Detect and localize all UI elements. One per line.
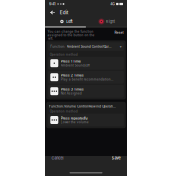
staticText: ▾ xyxy=(120,44,122,49)
staticText: Not Assigned xyxy=(61,92,82,95)
staticText: Operation method xyxy=(50,110,78,113)
staticText: Lower the volume xyxy=(61,120,89,124)
staticText: Press 2 Times xyxy=(61,73,84,77)
staticText: Ambient Sound/Off xyxy=(61,64,90,67)
button[interactable]: Function: xyxy=(48,42,124,51)
button[interactable]: Press 2 Times xyxy=(48,71,124,83)
staticText: Left xyxy=(66,19,72,24)
button[interactable]: Cancel xyxy=(49,155,65,162)
button[interactable]: Press 1 Time xyxy=(48,57,124,69)
staticText: Press 1 Time xyxy=(61,59,81,63)
staticText: Press repeatedly xyxy=(61,116,88,120)
staticText: Right xyxy=(106,19,115,24)
staticText: You can change the function assigned to … xyxy=(48,30,95,40)
staticText: Function:Volume Control/Rewind Operation xyxy=(49,105,116,108)
button[interactable]: Press repeatedly xyxy=(48,114,124,126)
button[interactable]: Reset xyxy=(113,30,124,35)
button[interactable]: Left xyxy=(45,17,86,27)
staticText: Function: xyxy=(50,45,65,48)
staticText: Ambient Sound Control/Quick A... xyxy=(67,45,112,48)
staticText: Save xyxy=(111,156,120,160)
button[interactable]: Back xyxy=(48,8,56,16)
staticText: Cancel xyxy=(51,156,63,160)
button[interactable]: Right xyxy=(86,17,127,27)
staticText: Press 3 Times xyxy=(61,87,84,91)
staticText: 4G xyxy=(110,2,115,6)
staticText: Edit xyxy=(60,10,69,15)
staticText: 9:41 xyxy=(49,2,56,6)
button[interactable]: Press 3 Times xyxy=(48,85,124,97)
staticText: Operation method xyxy=(50,53,78,56)
staticText: Reset xyxy=(114,30,123,34)
staticText: Play a benefit recommendation for you xyxy=(61,78,114,81)
button[interactable]: Save xyxy=(109,155,122,162)
